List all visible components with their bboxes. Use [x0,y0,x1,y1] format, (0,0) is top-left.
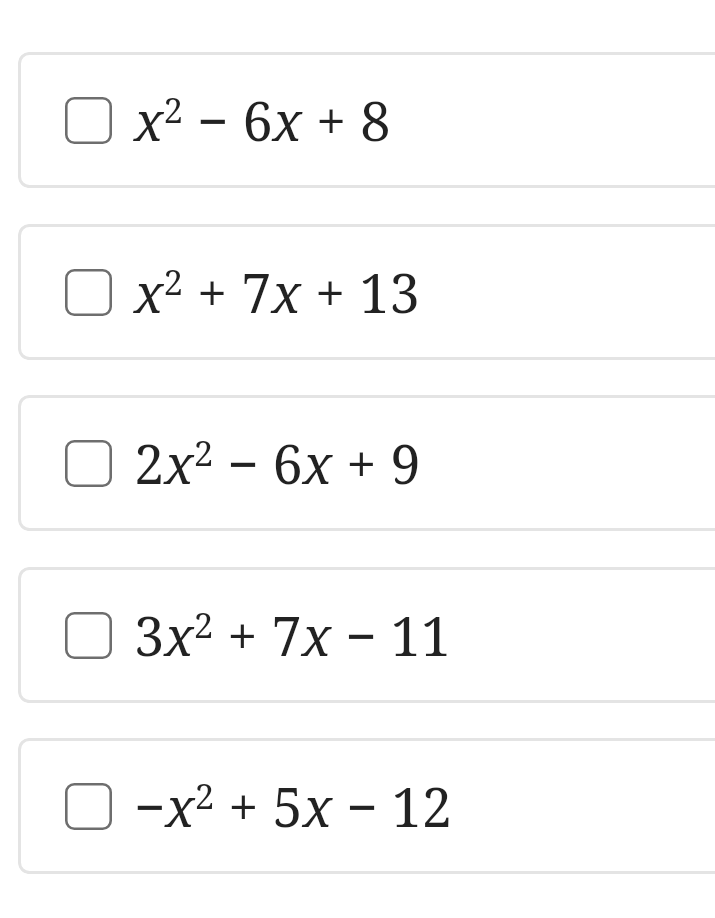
other: Select this answer [65,783,112,830]
staticText: 3x2 + 7x − 11 [134,598,451,672]
other: Select this answer [65,612,112,659]
button[interactable]: Select this answer [18,224,715,360]
staticText: −x2 + 5x − 12 [134,769,452,843]
other: Select this answer [65,97,112,144]
button[interactable]: Select this answer [18,567,715,703]
button[interactable]: Select this answer [18,395,715,531]
other: Select this answer [65,440,112,487]
other: Select this answer [65,269,112,316]
button[interactable]: Select this answer [18,52,715,188]
staticText: x2 − 6x + 8 [134,83,391,157]
button[interactable]: Select this answer [18,738,715,874]
staticText: x2 + 7x + 13 [134,255,420,329]
staticText: 2x2 − 6x + 9 [134,426,421,500]
